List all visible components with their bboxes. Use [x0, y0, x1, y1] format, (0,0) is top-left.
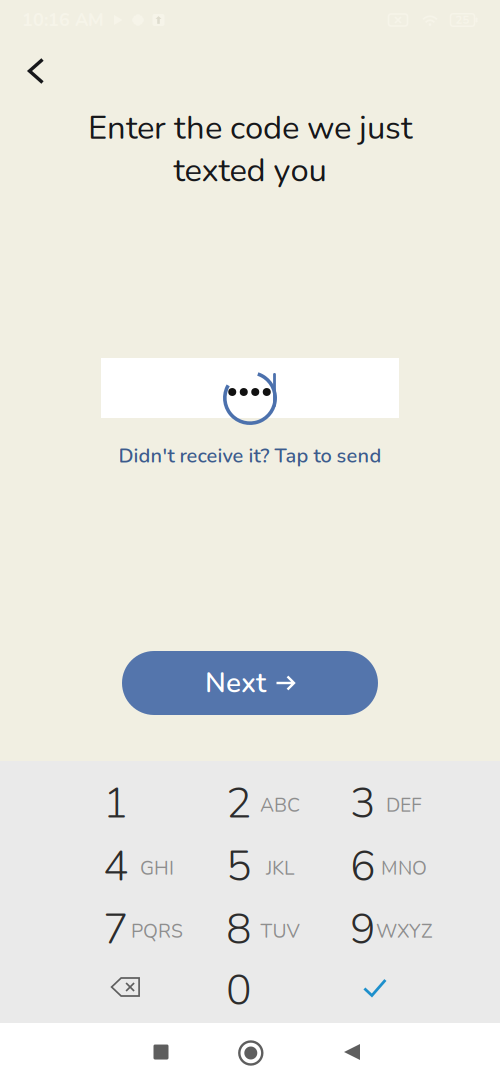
button[interactable]: 7: [84, 899, 208, 961]
staticText: 6: [350, 837, 376, 896]
staticText: 9: [350, 900, 376, 959]
staticText: Next: [205, 664, 266, 702]
staticText: Enter the code we just: [88, 106, 412, 150]
button[interactable]: Didn't receive it? Tap to send: [100, 441, 400, 471]
button[interactable]: 5: [207, 836, 331, 898]
staticText: GHI: [140, 855, 174, 882]
staticText: 8: [226, 900, 252, 959]
button[interactable]: Back: [10, 47, 62, 95]
staticText: DEF: [386, 792, 422, 819]
staticText: 3: [350, 774, 376, 833]
button[interactable]: Home: [213, 1023, 289, 1083]
staticText: 5: [226, 837, 252, 896]
staticText: 7: [103, 900, 129, 959]
button[interactable]: Done: [313, 956, 437, 1018]
button[interactable]: Recent apps: [123, 1022, 199, 1082]
staticText: 2: [226, 774, 252, 833]
staticText: PQRS: [131, 918, 183, 945]
button[interactable]: 0: [207, 960, 331, 1022]
button[interactable]: 3: [331, 773, 455, 835]
button[interactable]: 6: [331, 836, 455, 898]
button[interactable]: Next: [122, 651, 378, 715]
button[interactable]: Delete: [64, 956, 188, 1018]
staticText: Didn't receive it? Tap to send: [118, 442, 381, 470]
button[interactable]: 4: [84, 836, 208, 898]
button[interactable]: 8: [207, 899, 331, 961]
button[interactable]: 1: [84, 773, 208, 835]
staticText: ABC: [260, 792, 300, 819]
staticText: texted you: [173, 148, 326, 193]
staticText: MNO: [381, 855, 427, 882]
button[interactable]: 2: [207, 773, 331, 835]
staticText: JKL: [266, 855, 294, 882]
staticText: 1: [103, 774, 129, 833]
staticText: WXYZ: [376, 918, 432, 945]
staticText: 0: [226, 961, 252, 1020]
staticText: TUV: [260, 918, 299, 945]
button[interactable]: 9: [331, 899, 455, 961]
staticText: 4: [103, 837, 129, 896]
button[interactable]: Back: [314, 1022, 390, 1082]
